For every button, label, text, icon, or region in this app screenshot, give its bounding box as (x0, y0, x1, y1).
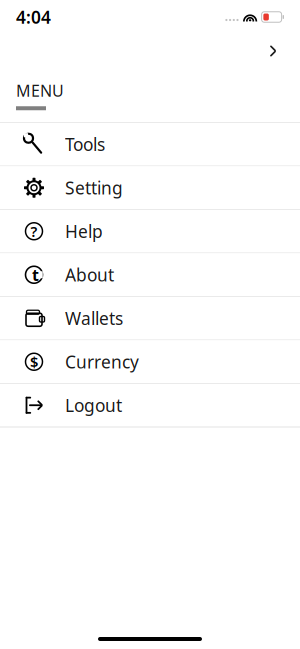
staticText: t (32, 264, 39, 285)
button[interactable]: $ (0, 340, 300, 384)
staticText: About (65, 263, 114, 286)
button[interactable]: Tools (0, 123, 300, 166)
staticText: Tools (65, 133, 105, 156)
staticText: Wallets (65, 307, 123, 330)
staticText: Help (65, 220, 103, 243)
staticText: MENU (16, 80, 64, 101)
staticText: Logout (65, 394, 122, 417)
staticText: $ (30, 352, 38, 371)
button[interactable]: Logout (0, 384, 300, 427)
button[interactable]: Next (258, 36, 288, 66)
staticText: Currency (65, 350, 139, 373)
button[interactable]: ? (0, 210, 300, 253)
staticText: Setting (65, 176, 123, 199)
staticText: ? (30, 221, 37, 241)
button[interactable]: t (0, 253, 300, 297)
button[interactable]: Wallets (0, 297, 300, 340)
staticText: 4:04 (16, 5, 51, 28)
button[interactable]: Setting (0, 166, 300, 210)
